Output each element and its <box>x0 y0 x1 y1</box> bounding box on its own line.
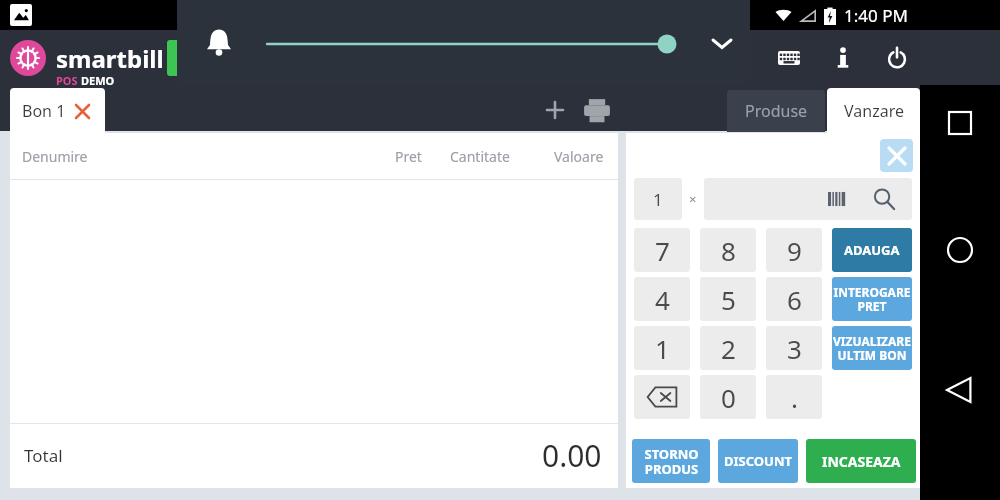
button[interactable]: 1 <box>634 326 690 370</box>
staticText: Produse <box>745 100 808 122</box>
button[interactable]: Recents <box>932 95 988 151</box>
staticText: Vanzare <box>844 100 904 122</box>
staticText: 8 <box>721 233 736 268</box>
staticText: 1 <box>653 188 663 211</box>
button[interactable] <box>10 40 46 76</box>
button[interactable]: Bon 1 <box>10 88 105 133</box>
button[interactable] <box>167 40 207 76</box>
button[interactable]: Home <box>932 222 988 278</box>
button[interactable]: 0 <box>700 375 756 419</box>
staticText: 1:40 PM <box>844 4 908 27</box>
button[interactable]: STORNO PRODUS <box>632 439 710 483</box>
button[interactable]: Print <box>580 93 614 127</box>
staticText: 3 <box>787 331 802 366</box>
button[interactable]: Info <box>826 41 860 75</box>
button[interactable]: 8 <box>700 228 756 272</box>
button[interactable]: Back <box>932 362 988 418</box>
button[interactable]: 7 <box>634 228 690 272</box>
button[interactable]: . <box>766 375 822 419</box>
staticText: smartbill <box>56 42 164 75</box>
staticText: 2 <box>721 331 736 366</box>
staticText: POS <box>56 73 81 88</box>
staticText: VIZUALIZARE ULTIM BON <box>833 333 911 363</box>
staticText: ADAUGA <box>844 241 900 259</box>
button[interactable]: Power <box>880 41 914 75</box>
staticText: 6 <box>787 282 802 317</box>
button[interactable]: ADAUGA <box>832 228 912 272</box>
button[interactable]: 4 <box>634 277 690 321</box>
button[interactable]: 5 <box>700 277 756 321</box>
staticText: INCASEAZA <box>822 452 901 471</box>
button[interactable]: Collapse volume <box>705 26 739 60</box>
staticText: 5 <box>721 282 736 317</box>
staticText: . <box>791 380 798 415</box>
button[interactable]: DISCOUNT <box>718 439 798 483</box>
staticText: Bon 1 <box>22 100 66 122</box>
button[interactable]: 3 <box>766 326 822 370</box>
staticText: 0.00 <box>542 435 602 476</box>
staticText: 1 <box>655 331 670 366</box>
button[interactable] <box>704 178 912 220</box>
staticText: × <box>689 190 697 208</box>
button[interactable]: Scanner <box>718 41 752 75</box>
staticText: STORNO PRODUS <box>644 445 699 478</box>
button[interactable]: VIZUALIZARE ULTIM BON <box>832 326 912 370</box>
button[interactable]: Add <box>538 93 572 127</box>
staticText: DISCOUNT <box>724 452 793 470</box>
button[interactable]: INCASEAZA <box>806 439 916 483</box>
staticText: INTEROGARE PRET <box>833 284 911 314</box>
button[interactable]: 1 <box>634 178 682 220</box>
button[interactable]: 9 <box>766 228 822 272</box>
staticText: Valoare <box>554 147 604 166</box>
staticText: Cantitate <box>450 147 510 166</box>
button[interactable]: Keyboard <box>772 41 806 75</box>
staticText: 9 <box>787 233 802 268</box>
staticText: Total <box>24 444 63 467</box>
button[interactable]: 2 <box>700 326 756 370</box>
staticText: DEMO <box>81 73 115 88</box>
button[interactable]: Vanzare <box>827 88 920 133</box>
button[interactable]: Backspace <box>634 375 690 419</box>
staticText: 7 <box>655 233 670 268</box>
button[interactable]: 6 <box>766 277 822 321</box>
button[interactable]: INTEROGARE PRET <box>832 277 912 321</box>
staticText: Pret <box>395 147 422 166</box>
staticText: 0 <box>721 380 736 415</box>
staticText: Denumire <box>22 147 88 166</box>
button[interactable]: Close <box>880 139 913 172</box>
button[interactable]: Produse <box>727 90 825 132</box>
staticText: 4 <box>655 282 670 317</box>
